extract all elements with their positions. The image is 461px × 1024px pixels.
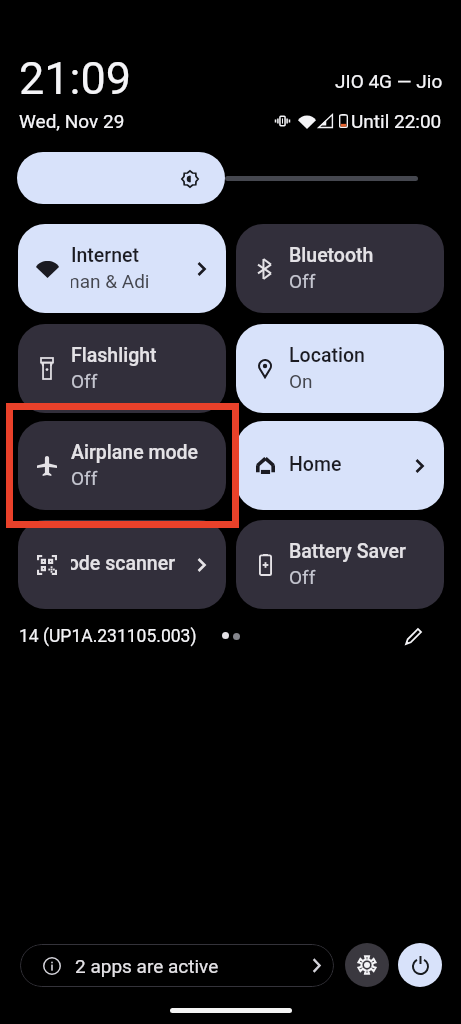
button[interactable]: QR code scanner bbox=[18, 520, 226, 609]
staticText: Location bbox=[289, 344, 365, 367]
staticText: QR code scanner bbox=[71, 552, 176, 575]
button[interactable]: Airplane mode bbox=[18, 421, 226, 510]
staticText: Wed, Nov 29 bbox=[19, 110, 125, 132]
staticText: Airplane mode bbox=[71, 441, 199, 464]
staticText: 2 apps are active bbox=[75, 955, 219, 977]
staticText: 14 (UP1A.231105.003) bbox=[19, 626, 197, 647]
button[interactable]: Brightness bbox=[17, 152, 225, 204]
staticText: man & Adi bbox=[71, 270, 150, 292]
button[interactable]: Settings bbox=[345, 943, 389, 987]
staticText: Bluetooth bbox=[289, 244, 374, 267]
staticText: Home bbox=[289, 453, 342, 476]
staticText: 21:09 bbox=[19, 52, 132, 105]
staticText: Off bbox=[71, 370, 98, 392]
staticText: Battery Saver bbox=[289, 540, 406, 563]
button[interactable]: Home bbox=[236, 421, 444, 510]
staticText: Internet bbox=[71, 244, 139, 267]
staticText: Off bbox=[289, 270, 316, 292]
button[interactable]: Power bbox=[398, 943, 442, 987]
staticText: JIO 4G — Jio bbox=[335, 70, 443, 92]
button[interactable]: Internet bbox=[18, 224, 226, 313]
staticText: Flashlight bbox=[71, 344, 157, 367]
button[interactable]: Bluetooth bbox=[236, 224, 444, 313]
button[interactable]: Edit tiles bbox=[396, 618, 432, 654]
staticText: Off bbox=[289, 566, 316, 588]
button[interactable]: Battery Saver bbox=[236, 520, 444, 609]
staticText: Off bbox=[71, 467, 98, 489]
staticText: Until 22:00 bbox=[351, 110, 442, 132]
button[interactable]: Flashlight bbox=[18, 324, 226, 413]
button[interactable]: Location bbox=[236, 324, 444, 413]
staticText: On bbox=[289, 370, 313, 392]
button[interactable]: 2 apps are active bbox=[20, 944, 334, 987]
